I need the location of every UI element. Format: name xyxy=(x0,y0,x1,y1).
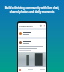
staticText: Build a thriving community with live cha… xyxy=(2,6,62,13)
staticText: Community xyxy=(19,24,33,27)
button[interactable] xyxy=(19,39,45,45)
button[interactable] xyxy=(19,30,45,37)
button[interactable]: Search xyxy=(40,25,42,27)
button[interactable]: Notifications xyxy=(43,25,45,27)
